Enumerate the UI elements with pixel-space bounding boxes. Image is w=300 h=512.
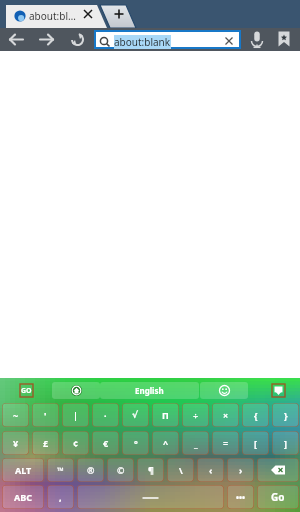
button[interactable]: [52, 382, 100, 399]
staticText: √: [132, 410, 139, 420]
staticText: ©: [117, 464, 125, 476]
button[interactable]: ÷: [182, 403, 209, 427]
staticText: •••: [236, 492, 246, 503]
staticText: ,: [59, 491, 62, 503]
button[interactable]: \: [167, 458, 194, 482]
button[interactable]: Hide keyboard: [272, 384, 285, 397]
button[interactable]: ^: [152, 431, 179, 455]
staticText: ·: [104, 409, 107, 421]
staticText: ^: [163, 437, 169, 449]
staticText: °: [134, 437, 138, 449]
staticText: ¶: [148, 464, 154, 476]
button[interactable]: ]: [272, 431, 299, 455]
button[interactable]: |: [62, 403, 89, 427]
staticText: about:blank: [114, 35, 171, 49]
staticText: ': [44, 409, 47, 421]
button[interactable]: Reload: [66, 28, 89, 51]
staticText: ÷: [193, 409, 199, 421]
button[interactable]: ›: [227, 458, 254, 482]
staticText: €: [103, 437, 109, 449]
staticText: \: [179, 464, 183, 476]
staticText: ×: [223, 409, 229, 421]
button[interactable]: Close tab: [80, 6, 96, 22]
staticText: ALT: [15, 464, 32, 476]
button[interactable]: ×: [212, 403, 239, 427]
button[interactable]: ¢: [62, 431, 89, 455]
staticText: ABC: [14, 491, 32, 503]
staticText: Go: [271, 490, 285, 504]
button[interactable]: Forward: [35, 28, 58, 51]
button[interactable]: °: [122, 431, 149, 455]
staticText: Π: [162, 409, 169, 421]
button[interactable]: √: [122, 403, 149, 427]
button[interactable]: Bookmarks: [272, 28, 296, 51]
button[interactable]: =: [212, 431, 239, 455]
button[interactable]: Go: [20, 384, 33, 397]
button[interactable]: ': [32, 403, 59, 427]
staticText: {: [254, 409, 258, 421]
staticText: ™: [57, 464, 64, 476]
button[interactable]: Backspace: [257, 458, 299, 482]
button[interactable]: ©: [107, 458, 134, 482]
button[interactable]: ~: [2, 403, 29, 427]
staticText: ®: [87, 464, 95, 476]
staticText: [: [254, 437, 257, 449]
staticText: about:bl…: [29, 9, 76, 23]
button[interactable]: €: [92, 431, 119, 455]
button[interactable]: ™: [47, 458, 74, 482]
staticText: £: [43, 437, 49, 449]
staticText: ¥: [13, 437, 19, 449]
button[interactable]: [: [242, 431, 269, 455]
button[interactable]: Clear: [222, 34, 236, 48]
button[interactable]: Voice search: [245, 28, 269, 51]
button[interactable]: about:blank: [96, 32, 239, 47]
staticText: ‹: [209, 464, 213, 476]
button[interactable]: ALT: [2, 458, 44, 482]
button[interactable]: Go: [257, 485, 299, 509]
button[interactable]: ¥: [2, 431, 29, 455]
staticText: ]: [284, 437, 287, 449]
staticText: GO: [21, 386, 32, 396]
button[interactable]: •••: [227, 485, 254, 509]
staticText: ›: [239, 464, 243, 476]
button[interactable]: £: [32, 431, 59, 455]
staticText: |: [73, 409, 78, 421]
staticText: English: [135, 385, 164, 396]
button[interactable]: New tab: [111, 6, 127, 22]
staticText: _: [194, 437, 198, 449]
button[interactable]: ,: [47, 485, 74, 509]
button[interactable]: Π: [152, 403, 179, 427]
button[interactable]: [200, 382, 248, 399]
button[interactable]: Back: [5, 28, 28, 51]
button[interactable]: ¶: [137, 458, 164, 482]
button[interactable]: ·: [92, 403, 119, 427]
button[interactable]: ‹: [197, 458, 224, 482]
button[interactable]: English: [100, 382, 199, 399]
button[interactable]: Space: [77, 485, 224, 509]
button[interactable]: {: [242, 403, 269, 427]
button[interactable]: }: [272, 403, 299, 427]
staticText: }: [284, 409, 288, 421]
button[interactable]: _: [182, 431, 209, 455]
staticText: ¢: [73, 437, 79, 449]
button[interactable]: ®: [77, 458, 104, 482]
staticText: ~: [13, 409, 19, 421]
staticText: =: [223, 437, 229, 449]
button[interactable]: ABC: [2, 485, 44, 509]
